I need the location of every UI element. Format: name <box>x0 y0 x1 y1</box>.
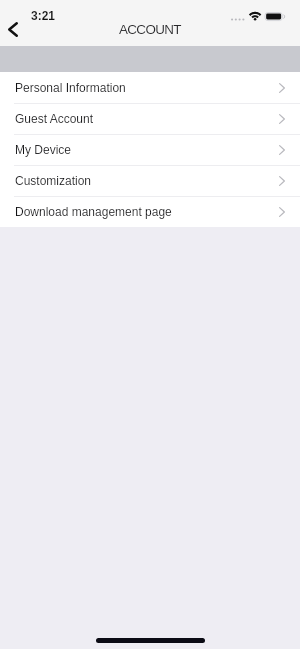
staticText: 3:21 <box>31 9 56 22</box>
button[interactable]: Customization <box>0 165 300 196</box>
button[interactable]: Guest Account <box>0 103 300 134</box>
staticText: Personal Information <box>15 81 126 94</box>
button[interactable]: Download management page <box>0 196 300 227</box>
staticText: Download management page <box>15 205 172 218</box>
staticText: My Device <box>15 143 72 156</box>
other: Wi-Fi <box>247 10 263 22</box>
staticText: ACCOUNT <box>119 22 181 37</box>
staticText: Guest Account <box>15 112 94 125</box>
button[interactable]: Personal Information <box>0 72 300 103</box>
staticText: Customization <box>15 174 92 187</box>
other: Cellular signal <box>231 18 245 21</box>
other: Battery <box>265 12 285 21</box>
button[interactable]: Back <box>0 14 31 46</box>
button[interactable]: My Device <box>0 134 300 165</box>
